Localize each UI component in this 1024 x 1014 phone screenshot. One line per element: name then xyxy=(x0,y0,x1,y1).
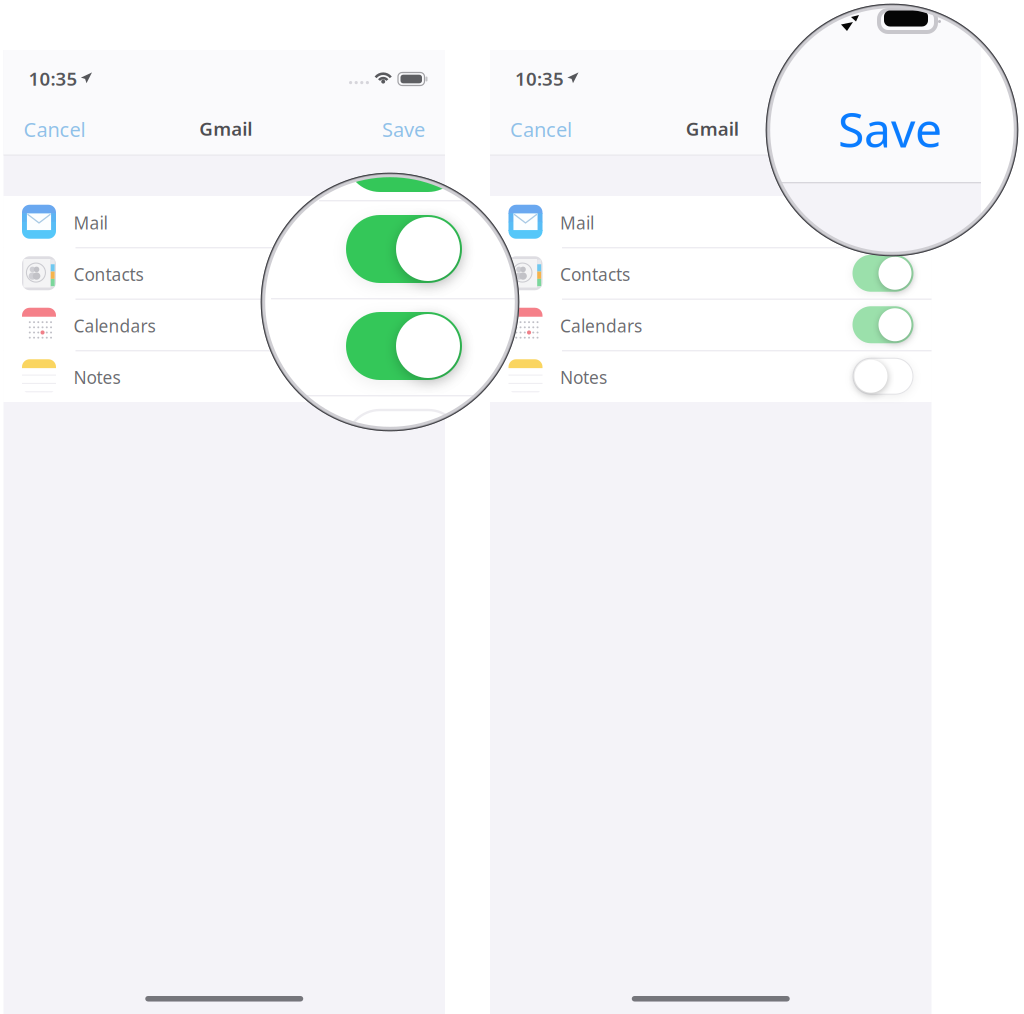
staticText: Gmail xyxy=(686,116,739,141)
staticText: Mail xyxy=(73,211,107,234)
staticText: 10:35 xyxy=(28,66,77,91)
staticText: Calendars xyxy=(73,314,155,337)
staticText: Contacts xyxy=(73,263,143,286)
button[interactable]: Calendars xyxy=(3,299,445,350)
button[interactable]: Save xyxy=(372,105,435,154)
staticText: Calendars xyxy=(560,314,642,337)
staticText: Mail xyxy=(560,211,594,234)
button[interactable]: Contacts xyxy=(3,247,445,299)
staticText: Gmail xyxy=(199,116,252,141)
button[interactable]: Save xyxy=(858,105,921,154)
staticText: Cancel xyxy=(510,116,572,143)
button[interactable]: Notes xyxy=(3,350,445,402)
staticText: Save xyxy=(868,116,911,143)
staticText: Save xyxy=(382,116,425,143)
button[interactable]: Cancel xyxy=(501,105,581,154)
button[interactable]: Cancel xyxy=(14,105,94,154)
staticText: Save xyxy=(838,97,942,161)
button[interactable]: Calendars xyxy=(490,299,931,350)
button[interactable]: Contacts xyxy=(490,247,931,299)
staticText: Notes xyxy=(560,366,607,389)
button[interactable]: Notes xyxy=(490,350,931,402)
staticText: 10:35 xyxy=(515,66,564,91)
button[interactable]: Mail xyxy=(490,196,931,247)
staticText: Notes xyxy=(73,366,120,389)
staticText: Contacts xyxy=(560,263,630,286)
button[interactable]: Mail xyxy=(3,196,445,247)
staticText: Cancel xyxy=(23,116,85,143)
